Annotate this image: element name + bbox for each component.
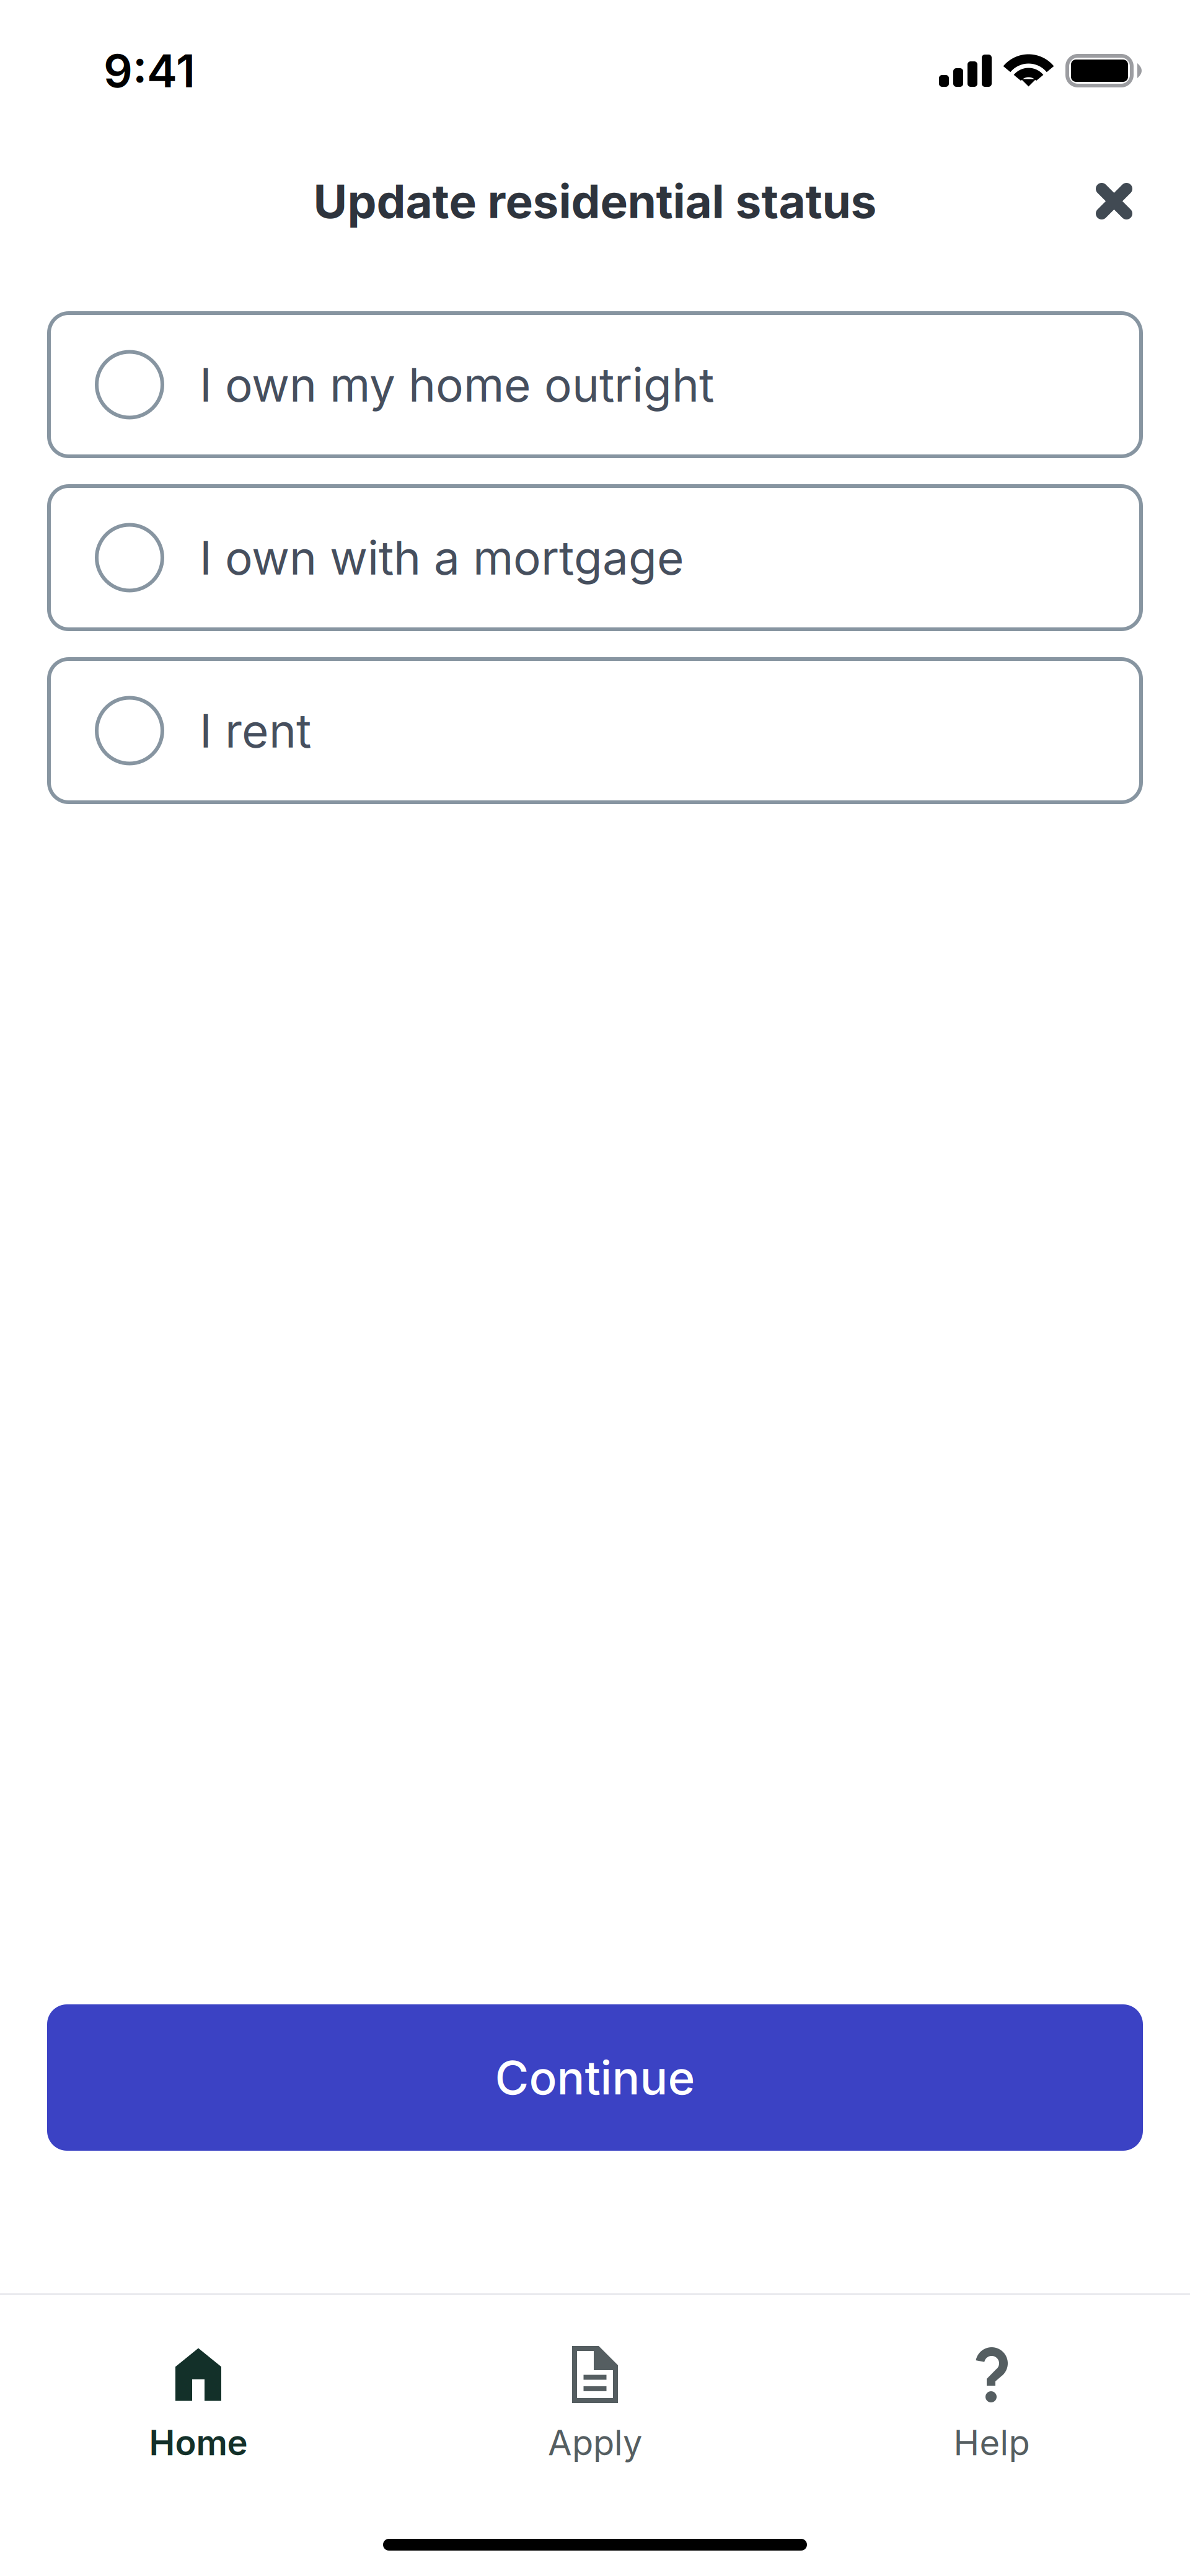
staticText: Home [149, 2422, 248, 2464]
button[interactable]: Apply [397, 2344, 793, 2461]
staticText: 9:41 [104, 43, 195, 98]
button[interactable]: I rent [47, 657, 1143, 804]
button[interactable]: Close [1077, 164, 1151, 238]
staticText: I own my home outright [200, 357, 714, 413]
staticText: I rent [200, 703, 311, 759]
staticText: Update residential status [313, 173, 877, 229]
button[interactable]: Continue [47, 2004, 1143, 2151]
button[interactable]: Home [0, 2344, 397, 2461]
staticText: I own with a mortgage [200, 530, 684, 586]
button[interactable]: Help [793, 2344, 1190, 2461]
staticText: Apply [548, 2422, 642, 2464]
button[interactable]: I own my home outright [47, 311, 1143, 458]
staticText: Help [954, 2422, 1030, 2464]
button[interactable]: I own with a mortgage [47, 484, 1143, 631]
staticText: Continue [495, 2050, 695, 2106]
